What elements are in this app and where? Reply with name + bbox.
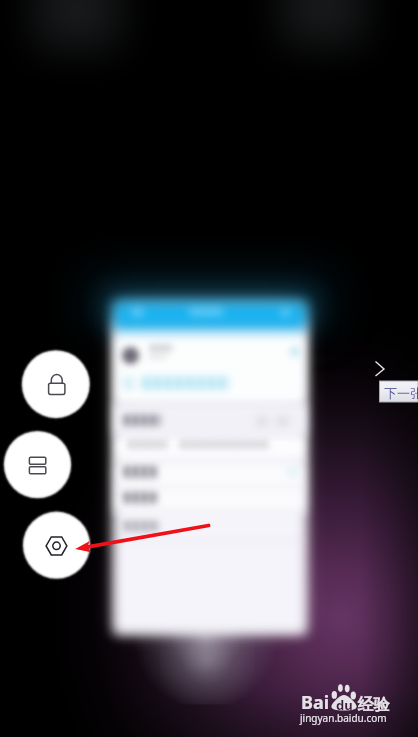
button[interactable]: 下一张 — [380, 381, 418, 402]
button[interactable]: Next image — [371, 357, 393, 381]
button[interactable]: App preview screenshot — [114, 301, 306, 634]
button[interactable]: Settings — [23, 512, 90, 579]
button[interactable]: Split screen — [4, 431, 71, 498]
button[interactable]: Lock screen — [22, 350, 90, 418]
